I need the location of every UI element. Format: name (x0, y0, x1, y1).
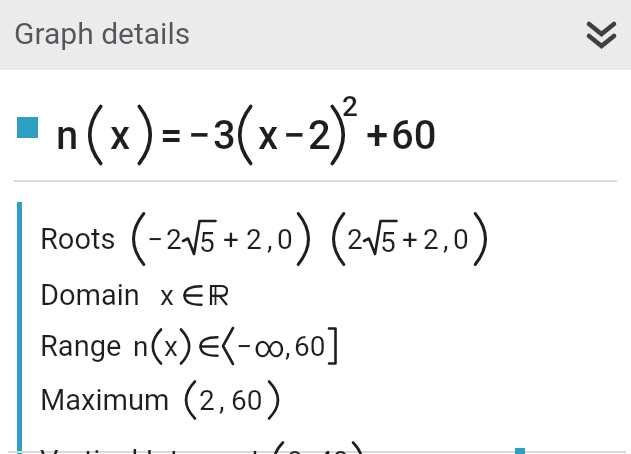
staticText: x (160, 279, 174, 312)
staticText: 5 (380, 226, 396, 259)
staticText: 2 (347, 223, 363, 256)
staticText: x (164, 330, 178, 363)
staticText: Vertical Intercept (40, 444, 261, 454)
staticText: Graph details (14, 16, 191, 51)
staticText: − (283, 112, 306, 159)
staticText: 0 (453, 223, 469, 256)
staticText: x (258, 112, 279, 159)
staticText: Domain (40, 278, 140, 312)
staticText: 0 (277, 223, 293, 256)
staticText: ∞ (254, 329, 285, 364)
staticText: + (223, 223, 239, 256)
staticText: x (110, 112, 131, 159)
staticText: 2 (342, 90, 358, 123)
staticText: 5 (199, 226, 215, 259)
staticText: − (236, 330, 253, 363)
staticText: + (402, 223, 418, 256)
staticText: , (285, 330, 291, 363)
staticText: , (267, 223, 273, 256)
staticText: 2 (199, 384, 215, 417)
staticText: Roots (40, 222, 116, 256)
staticText: + (366, 112, 389, 159)
staticText: 48 (317, 445, 349, 454)
staticText: 60 (391, 112, 437, 159)
staticText: − (188, 112, 211, 159)
staticText: 0 (287, 445, 303, 454)
staticText: , (219, 384, 225, 417)
staticText: 2 (166, 223, 182, 256)
staticText: n (133, 330, 149, 363)
button[interactable]: Graph details (0, 0, 631, 70)
staticText: , (307, 445, 313, 454)
staticText: 2 (423, 223, 439, 256)
staticText: 2 (308, 112, 331, 159)
staticText: Maximum (40, 383, 170, 417)
staticText: Range (40, 329, 122, 363)
staticText: , (443, 223, 449, 256)
staticText: 3 (213, 112, 236, 159)
staticText: 2 (246, 223, 262, 256)
staticText: n (56, 112, 79, 159)
staticText: 60 (294, 330, 326, 363)
staticText: − (147, 223, 164, 256)
staticText: 60 (231, 384, 263, 417)
staticText: = (160, 112, 183, 159)
